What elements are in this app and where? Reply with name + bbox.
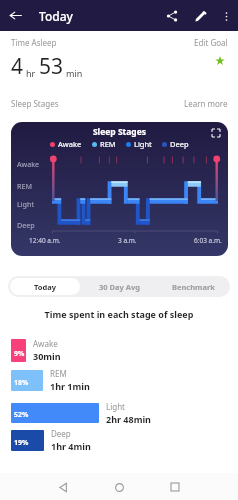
staticText: Learn more: [184, 98, 228, 109]
staticText: Awake: [33, 338, 58, 349]
button[interactable]: Fullscreen: [211, 128, 221, 138]
staticText: 12:40 a.m.: [29, 236, 61, 245]
staticText: Deep: [17, 220, 35, 230]
staticText: Deep: [51, 428, 71, 439]
button[interactable]: Benchmark: [158, 278, 228, 295]
button[interactable]: Back: [0, 0, 31, 31]
staticText: Time Asleep: [11, 37, 57, 48]
button[interactable]: Edit Goal: [194, 37, 228, 48]
staticText: 53: [39, 52, 64, 81]
button[interactable]: Share: [158, 2, 186, 30]
staticText: 6:03 a.m.: [194, 236, 222, 245]
button[interactable]: Home: [108, 476, 130, 498]
staticText: Light: [134, 139, 152, 149]
staticText: 3 a.m.: [118, 236, 137, 245]
staticText: Edit Goal: [194, 37, 228, 48]
staticText: Awake: [58, 139, 82, 149]
staticText: 18%: [14, 378, 29, 388]
staticText: REM: [100, 139, 116, 149]
staticText: Sleep Stages: [11, 126, 228, 138]
button[interactable]: Recents: [164, 476, 186, 498]
staticText: Today: [39, 8, 73, 24]
staticText: Light: [106, 401, 126, 412]
button[interactable]: Learn more: [184, 98, 228, 109]
staticText: REM: [17, 181, 32, 191]
staticText: Deep: [170, 139, 189, 149]
staticText: 4: [11, 52, 24, 81]
staticText: Light: [17, 199, 35, 209]
button[interactable]: Edit: [186, 2, 214, 30]
staticText: Benchmark: [172, 282, 215, 292]
staticText: 52%: [14, 410, 29, 420]
staticText: 2hr 48min: [106, 413, 151, 425]
staticText: min: [66, 67, 83, 79]
staticText: Sleep Stages: [11, 98, 59, 109]
staticText: Today: [34, 282, 57, 292]
staticText: 9%: [14, 349, 25, 359]
staticText: 1hr 1min: [50, 380, 90, 392]
button[interactable]: 30 Day Avg: [84, 278, 154, 295]
button[interactable]: Today: [10, 278, 80, 295]
staticText: 19%: [14, 438, 29, 448]
button[interactable]: More options: [214, 4, 238, 28]
staticText: 1hr 4min: [51, 440, 91, 452]
staticText: Time spent in each stage of sleep: [0, 308, 238, 320]
button[interactable]: Sleep Stages: [11, 122, 228, 256]
staticText: REM: [50, 368, 67, 379]
staticText: 30min: [33, 350, 61, 362]
staticText: 30 Day Avg: [99, 282, 140, 292]
staticText: Awake: [17, 159, 40, 169]
button[interactable]: Back: [52, 476, 74, 498]
staticText: hr: [26, 67, 36, 79]
